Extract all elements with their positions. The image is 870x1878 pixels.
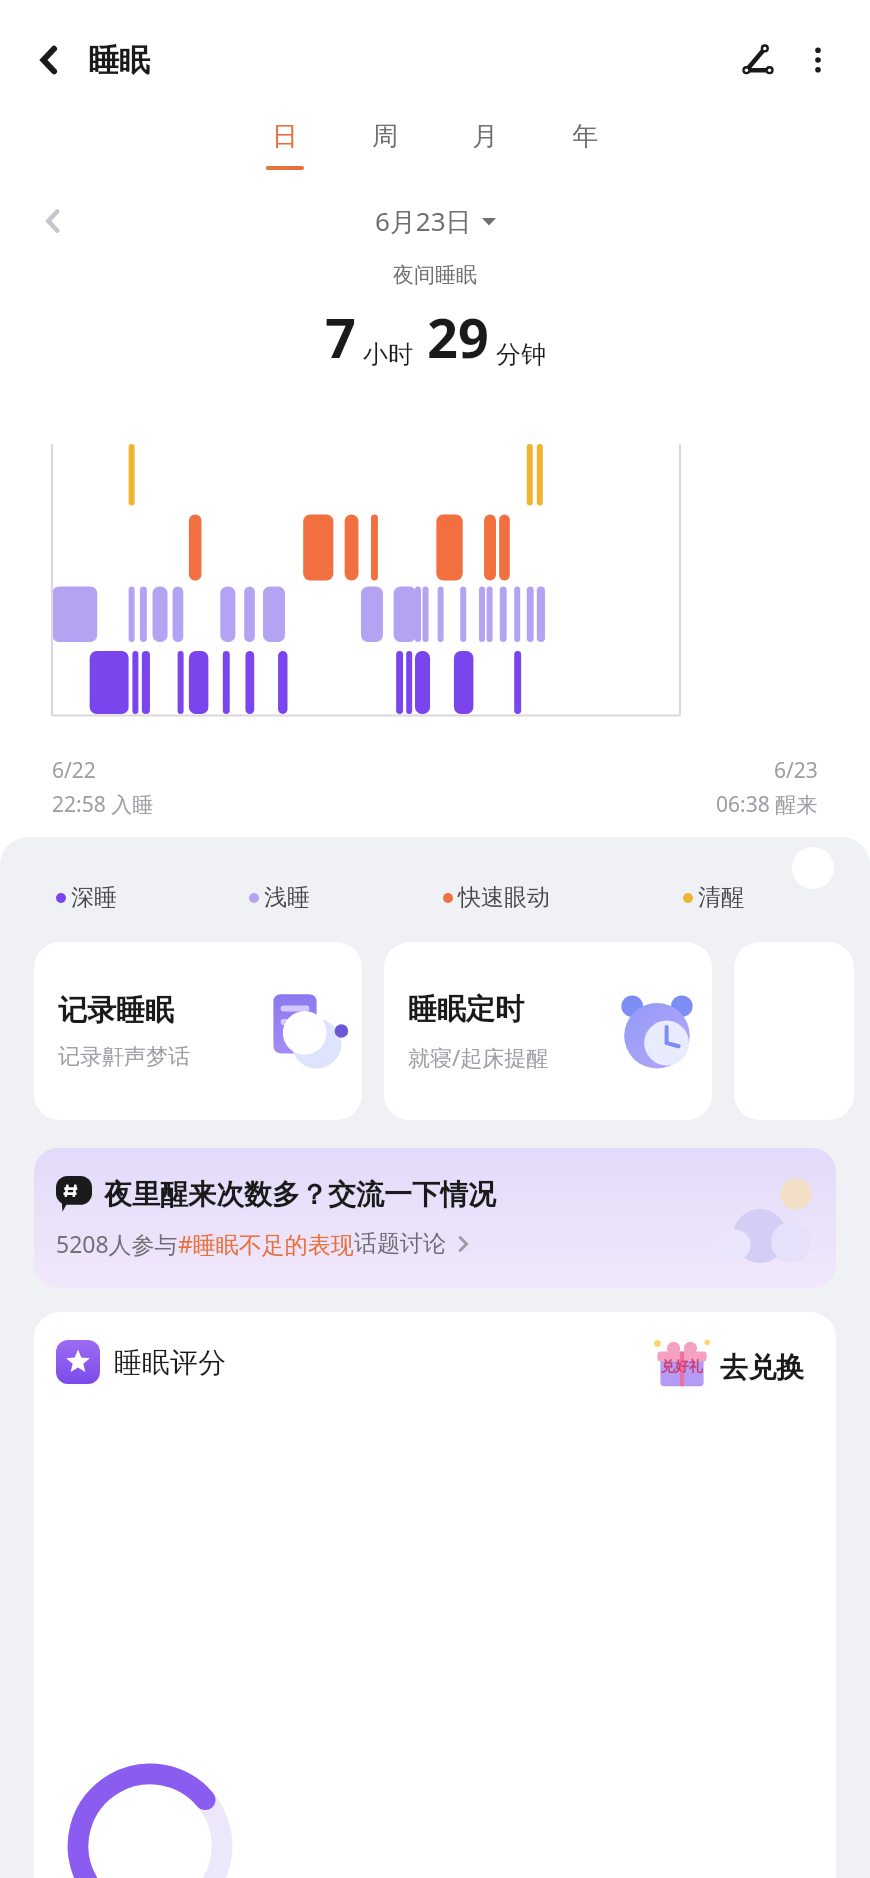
staticText: 兑好礼 [661, 1358, 703, 1376]
button[interactable]: 日 [235, 120, 335, 170]
staticText: 快速眼动 [458, 883, 550, 912]
staticText: 06:38 醒来 [716, 790, 818, 819]
button[interactable]: More options [788, 30, 848, 90]
staticText: 去兑换 [720, 1350, 804, 1385]
staticText: 话题讨论 [354, 1229, 446, 1258]
button[interactable]: 兑好礼 [642, 1328, 830, 1406]
staticText: 6/22 [52, 756, 96, 785]
staticText: 29 [427, 300, 489, 374]
staticText: 浅睡 [264, 883, 310, 912]
staticText: 夜间睡眠 [0, 262, 870, 288]
staticText: 夜里醒来次数多？交流一下情况 [104, 1177, 496, 1212]
staticText: 6/23 [774, 756, 818, 785]
staticText: 年 [572, 120, 598, 153]
button[interactable]: 睡眠定时 [384, 942, 712, 1120]
button[interactable]: 记录睡眠 [34, 942, 362, 1120]
staticText: 清醒 [698, 883, 744, 912]
staticText: 深睡 [71, 883, 117, 912]
staticText: 就寝/起床提醒 [408, 1042, 549, 1072]
button[interactable]: Expand sheet [792, 847, 834, 889]
staticText: 5208人参与 [56, 1228, 178, 1259]
staticText: 分钟 [496, 339, 546, 370]
staticText: 睡眠定时 [408, 991, 524, 1028]
button[interactable]: Previous day [30, 198, 76, 244]
staticText: 日 [272, 120, 298, 153]
button[interactable]: Back [22, 33, 76, 87]
staticText: 睡眠 [88, 41, 150, 80]
button[interactable]: Share [728, 30, 788, 90]
staticText: 7 [325, 300, 356, 374]
staticText: 记录鼾声梦话 [58, 1043, 190, 1071]
staticText: 22:58 入睡 [52, 790, 154, 819]
button[interactable]: 年 [535, 120, 635, 170]
button[interactable]: 周 [335, 120, 435, 170]
staticText: 小时 [363, 339, 413, 370]
staticText: 睡眠评分 [114, 1345, 226, 1380]
staticText: 6月23日 [375, 203, 472, 239]
staticText: 记录睡眠 [58, 992, 174, 1029]
button[interactable]: 月 [435, 120, 535, 170]
button[interactable]: 6月23日 [375, 203, 496, 239]
button[interactable]: 夜里醒来次数多？交流一下情况 [34, 1148, 836, 1288]
staticText: #睡眠不足的表现 [178, 1228, 354, 1259]
staticText: 月 [472, 120, 498, 153]
staticText: 周 [372, 120, 398, 153]
